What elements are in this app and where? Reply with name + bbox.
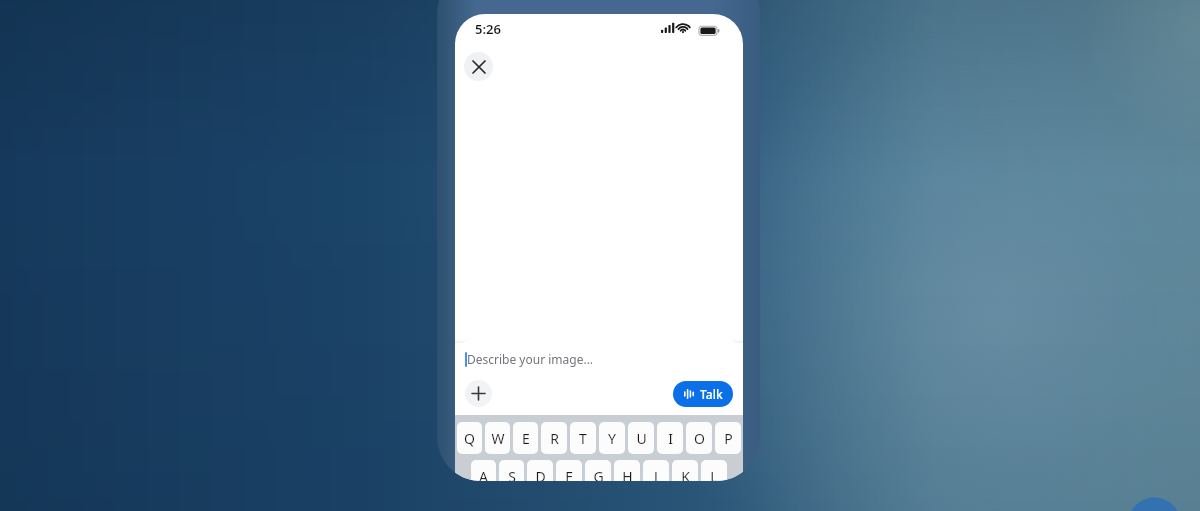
staticText: G: [593, 467, 604, 481]
staticText: T: [579, 429, 587, 448]
button[interactable]: P: [715, 422, 741, 454]
staticText: Talk: [700, 386, 723, 402]
button[interactable]: J: [643, 460, 669, 481]
staticText: R: [550, 429, 559, 448]
staticText: U: [636, 429, 647, 448]
button[interactable]: E: [513, 422, 538, 454]
staticText: A: [479, 467, 488, 481]
button[interactable]: Add attachment: [465, 380, 492, 407]
staticText: W: [491, 429, 505, 448]
staticText: Q: [464, 429, 475, 448]
staticText: P: [724, 429, 733, 448]
button[interactable]: Close: [464, 52, 493, 81]
staticText: L: [710, 467, 718, 481]
staticText: O: [694, 429, 705, 448]
button[interactable]: W: [485, 422, 510, 454]
button[interactable]: F: [556, 460, 582, 481]
button[interactable]: Talk: [673, 381, 733, 407]
button[interactable]: T: [570, 422, 596, 454]
button[interactable]: L: [701, 460, 727, 481]
button[interactable]: D: [527, 460, 553, 481]
staticText: E: [522, 429, 530, 448]
button[interactable]: I: [657, 422, 683, 454]
staticText: S: [508, 467, 516, 481]
button[interactable]: U: [628, 422, 654, 454]
staticText: K: [681, 467, 690, 481]
button[interactable]: O: [686, 422, 712, 454]
button[interactable]: Y: [599, 422, 625, 454]
button[interactable]: H: [614, 460, 640, 481]
button[interactable]: S: [499, 460, 524, 481]
button[interactable]: G: [585, 460, 611, 481]
staticText: D: [535, 467, 546, 481]
button[interactable]: A: [471, 460, 496, 481]
staticText: J: [654, 467, 658, 481]
button[interactable]: Q: [457, 422, 482, 454]
staticText: 5:26: [475, 20, 501, 38]
button[interactable]: K: [672, 460, 698, 481]
staticText: F: [565, 467, 573, 481]
button[interactable]: R: [541, 422, 567, 454]
staticText: Describe your image...: [467, 351, 594, 367]
staticText: H: [622, 467, 633, 481]
staticText: I: [668, 429, 673, 448]
staticText: Y: [608, 429, 616, 448]
